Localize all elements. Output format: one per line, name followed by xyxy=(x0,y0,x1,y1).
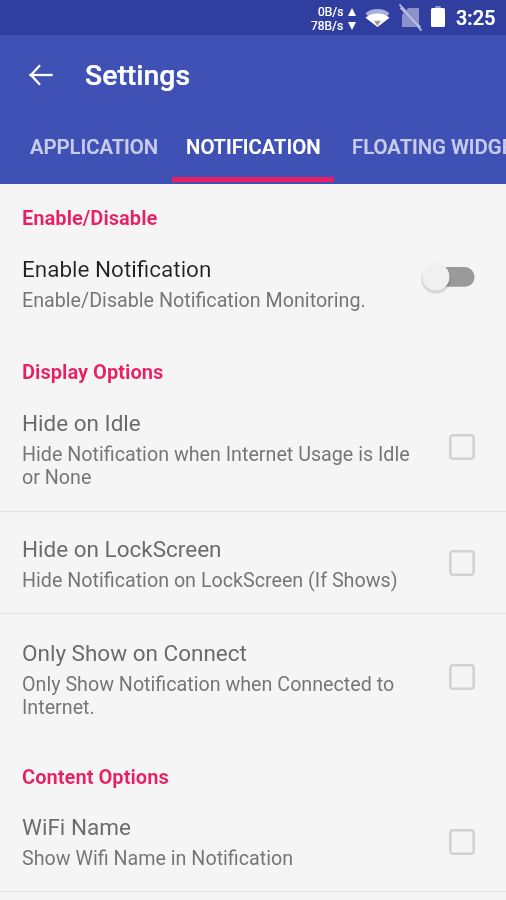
staticText: NOTIFICATION xyxy=(186,135,321,159)
staticText: Only Show Notification when Connected to… xyxy=(22,673,430,719)
staticText: Content Options xyxy=(22,765,169,789)
staticText: APPLICATION xyxy=(30,135,159,159)
staticText: Enable Notification xyxy=(22,256,212,282)
button[interactable]: FLOATING WIDGET xyxy=(334,135,506,180)
staticText: Settings xyxy=(85,59,191,92)
button[interactable]: Enable Notification xyxy=(0,230,506,312)
staticText: Hide on Idle xyxy=(22,410,141,436)
staticText: Hide Notification when Internet Usage is… xyxy=(22,443,430,489)
staticText: WiFi Name xyxy=(22,814,131,840)
staticText: 0B/s xyxy=(318,5,344,19)
staticText: Show Wifi Name in Notification xyxy=(22,847,294,870)
button[interactable]: Hide on Idle xyxy=(0,384,506,511)
staticText: Enable/Disable Notification Monitoring. xyxy=(22,289,366,312)
button[interactable]: APPLICATION xyxy=(0,135,172,180)
staticText: 3:25 xyxy=(456,6,496,29)
staticText: Enable/Disable xyxy=(22,206,158,230)
staticText: Only Show on Connect xyxy=(22,640,247,666)
staticText: FLOATING WIDGET xyxy=(352,135,506,159)
button[interactable]: Only Show on Connect xyxy=(0,614,506,719)
button[interactable]: Back xyxy=(9,53,73,97)
staticText: Hide on LockScreen xyxy=(22,536,222,562)
staticText: Display Options xyxy=(22,360,164,384)
staticText: 78B/s xyxy=(311,19,344,33)
button[interactable]: Hide on LockScreen xyxy=(0,512,506,613)
button[interactable]: NOTIFICATION xyxy=(172,135,334,180)
staticText: Hide Notification on LockScreen (If Show… xyxy=(22,569,398,592)
button[interactable]: WiFi Name xyxy=(0,789,506,891)
